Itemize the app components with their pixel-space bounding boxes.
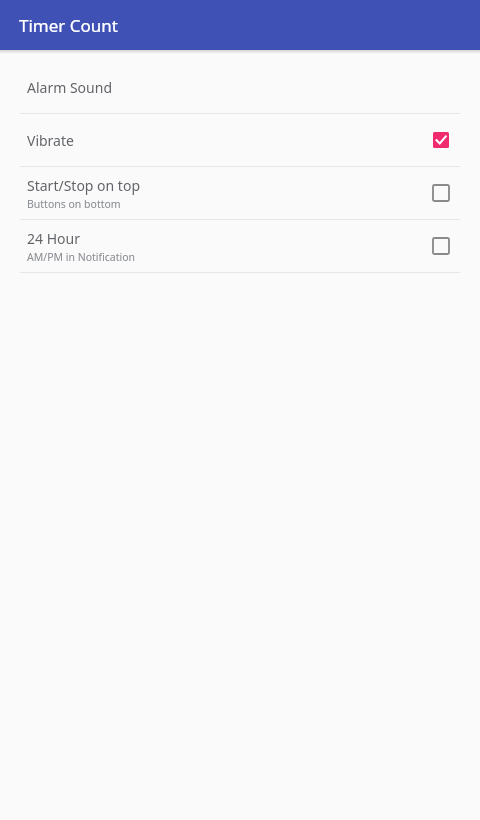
staticText: Start/Stop on top: [27, 176, 140, 195]
button[interactable]: Vibrate: [0, 114, 480, 166]
staticText: Vibrate: [27, 131, 74, 150]
staticText: Alarm Sound: [27, 78, 112, 97]
staticText: Timer Count: [19, 14, 118, 37]
button[interactable]: Start/Stop on top: [0, 167, 480, 219]
staticText: 24 Hour: [27, 229, 80, 248]
button[interactable]: 24 Hour: [0, 220, 480, 272]
button[interactable]: Disabled checkbox: [424, 229, 458, 263]
staticText: Buttons on bottom: [27, 197, 121, 211]
button[interactable]: Alarm Sound: [0, 61, 480, 113]
staticText: AM/PM in Notification: [27, 250, 136, 264]
button[interactable]: Disabled checkbox: [424, 176, 458, 210]
button[interactable]: Enabled checkbox: [424, 123, 458, 157]
